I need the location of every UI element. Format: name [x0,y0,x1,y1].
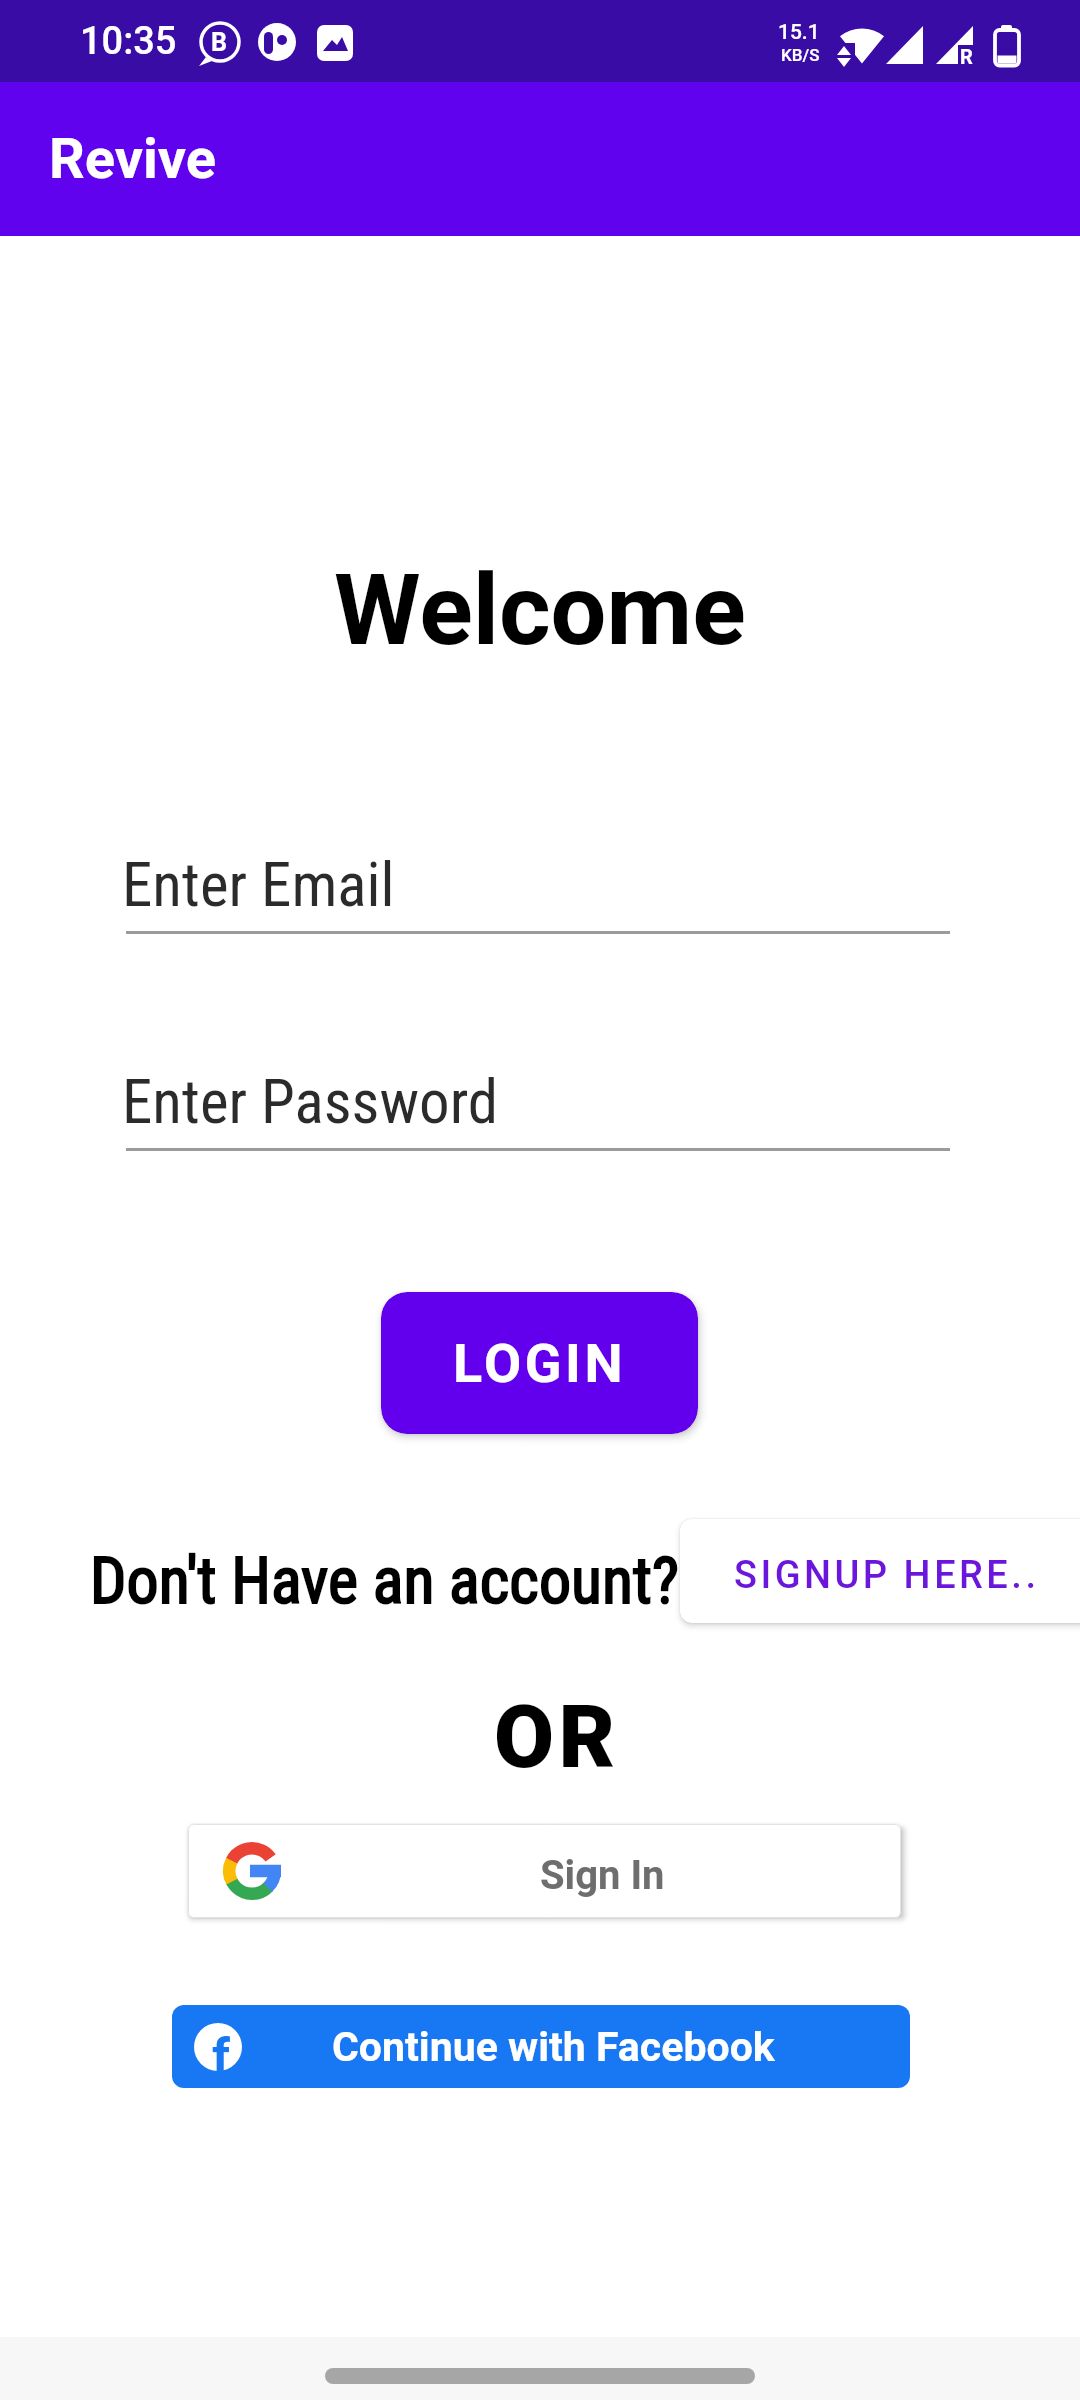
staticText: Enter Password [122,1066,498,1137]
staticText: Don't Have an account? [90,1544,679,1619]
staticText: 15.1 [778,20,820,45]
staticText: B [211,28,227,57]
staticText: f [212,2028,230,2076]
staticText: SIGNUP HERE.. [734,1553,1040,1598]
staticText: KB/S [781,45,820,65]
staticText: Continue with Facebook [332,2023,775,2071]
staticText: OR [494,1686,620,1788]
staticText: 10:35 [80,19,177,64]
staticText: R [960,45,973,68]
staticText: Enter Email [122,849,395,920]
staticText: Sign In [540,1852,665,1899]
staticText: LOGIN [453,1332,627,1395]
staticText: Revive [49,126,217,192]
staticText: Welcome [334,552,746,668]
